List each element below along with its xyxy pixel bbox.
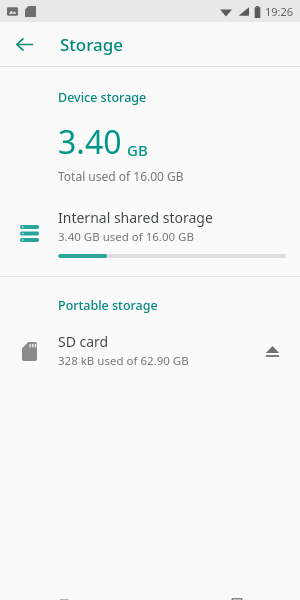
button[interactable]: Internal shared storage [0, 202, 300, 266]
staticText: 19:26 [265, 4, 294, 19]
staticText: Portable storage [58, 297, 158, 314]
staticText: Internal shared storage [58, 208, 213, 227]
staticText: Device storage [58, 89, 147, 106]
button[interactable]: SD card [0, 330, 300, 371]
staticText: 3.40 [58, 120, 122, 164]
staticText: Total used of 16.00 GB [58, 168, 184, 184]
button[interactable]: Eject SD card [254, 333, 290, 369]
button[interactable]: Back [8, 28, 40, 60]
staticText: SD card [58, 332, 109, 351]
staticText: GB [127, 140, 148, 160]
staticText: 3.40 GB used of 16.00 GB [58, 229, 194, 245]
staticText: Storage [60, 33, 124, 56]
staticText: 328 kB used of 62.90 GB [58, 353, 189, 369]
